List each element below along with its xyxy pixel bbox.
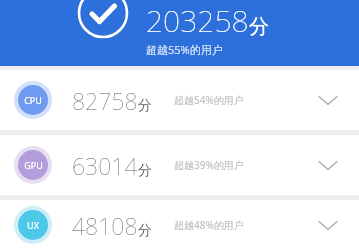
staticText: 82758 bbox=[72, 85, 138, 116]
staticText: UX bbox=[27, 219, 39, 231]
button[interactable]: GPU bbox=[0, 135, 359, 195]
button[interactable]: CPU bbox=[0, 70, 359, 130]
staticText: 超越39%的用户 bbox=[174, 158, 244, 172]
staticText: 超越48%的用户 bbox=[174, 218, 244, 232]
staticText: 超越55%的用户 bbox=[146, 42, 223, 57]
staticText: 超越54%的用户 bbox=[174, 93, 244, 107]
staticText: 分 bbox=[138, 222, 152, 240]
staticText: 分 bbox=[138, 97, 152, 115]
staticText: GPU bbox=[24, 159, 43, 171]
staticText: 48108 bbox=[72, 210, 138, 241]
button[interactable]: Expand GPU details bbox=[311, 148, 345, 182]
staticText: CPU bbox=[24, 94, 42, 106]
button[interactable]: UX bbox=[0, 200, 359, 250]
other: Benchmark complete bbox=[76, 0, 130, 44]
staticText: 分 bbox=[138, 162, 152, 180]
staticText: 分 bbox=[249, 14, 269, 39]
staticText: 63014 bbox=[72, 150, 138, 181]
button[interactable]: Expand CPU details bbox=[311, 83, 345, 117]
staticText: 203258 bbox=[146, 0, 249, 41]
button[interactable]: Expand UX details bbox=[311, 208, 345, 242]
